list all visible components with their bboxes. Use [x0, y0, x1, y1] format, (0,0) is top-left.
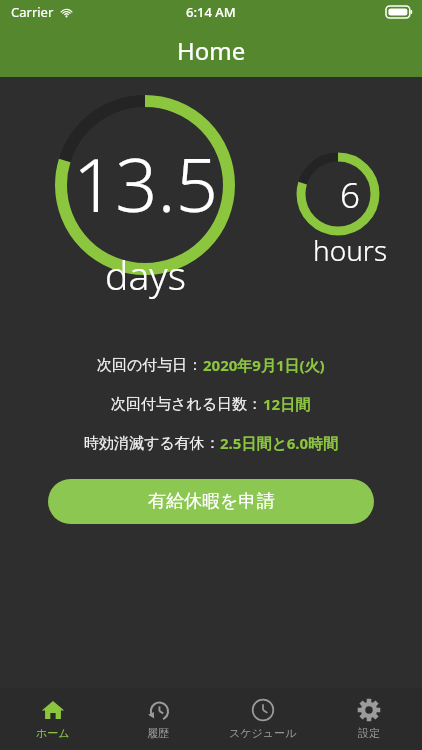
staticText: 次回付与される日数： [111, 395, 263, 414]
staticText: 6:14 AM [186, 3, 236, 21]
staticText: 12日間 [263, 394, 311, 414]
staticText: hours [313, 231, 387, 269]
button[interactable]: スケジュール [210, 688, 316, 750]
button[interactable]: 設定 [316, 688, 422, 750]
button[interactable]: ホーム [0, 688, 105, 750]
staticText: 6 [340, 171, 360, 219]
staticText: Home [177, 34, 246, 67]
staticText: 13.5 [73, 133, 218, 234]
button[interactable]: 有給休暇を申請 [48, 479, 374, 524]
staticText: 2.5日間と6.0時間 [220, 433, 339, 453]
staticText: スケジュール [229, 726, 297, 740]
staticText: 履歴 [147, 726, 169, 740]
staticText: days [105, 248, 186, 301]
staticText: 2020年9月1日(火) [203, 355, 325, 375]
staticText: 時効消滅する有休： [84, 434, 220, 453]
staticText: Carrier [11, 3, 54, 21]
staticText: 有給休暇を申請 [148, 490, 275, 513]
staticText: 次回の付与日： [97, 356, 203, 375]
staticText: 設定 [358, 726, 380, 740]
button[interactable]: 履歴 [105, 688, 210, 750]
staticText: ホーム [36, 726, 70, 740]
